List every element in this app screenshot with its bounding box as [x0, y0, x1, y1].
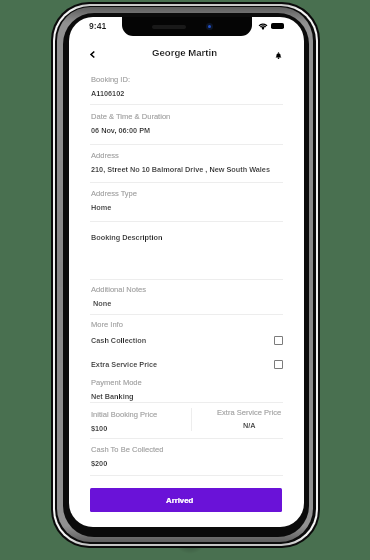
staticText: 210, Street No 10 Balmoral Drive , New S… [91, 165, 270, 173]
staticText: Initial Booking Price [91, 410, 158, 418]
staticText: 06 Nov, 06:00 PM [91, 126, 151, 134]
button[interactable]: Extra Service Price [90, 357, 283, 371]
staticText: More Info [91, 320, 123, 328]
staticText: Net Banking [91, 392, 134, 400]
button[interactable]: Notifications [269, 46, 287, 64]
button[interactable]: Cash Collection [90, 333, 283, 347]
staticText: Address Type [91, 189, 138, 197]
staticText: Extra Service Price [217, 408, 282, 416]
button[interactable]: Arrived [90, 488, 282, 512]
staticText: Home [91, 203, 112, 211]
staticText: Payment Mode [91, 378, 142, 386]
staticText: 9:41 [89, 21, 107, 31]
staticText: N/A [243, 421, 256, 429]
staticText: Extra Service Price [91, 360, 158, 368]
staticText: Cash Collection [91, 336, 147, 344]
staticText: Arrived [166, 496, 194, 505]
staticText: Booking Description [91, 233, 163, 241]
staticText: Date & Time & Duration [91, 112, 171, 120]
staticText: Additional Notes [91, 285, 146, 293]
staticText: George Martin [152, 47, 218, 58]
staticText: Booking ID: [91, 75, 131, 83]
staticText: Cash To Be Collected [91, 445, 164, 453]
staticText: $200 [91, 459, 108, 467]
button[interactable]: Back [83, 45, 101, 63]
staticText: A1106102 [91, 89, 125, 97]
staticText: None [93, 299, 112, 307]
staticText: $100 [91, 424, 108, 432]
staticText: Address [91, 151, 119, 159]
